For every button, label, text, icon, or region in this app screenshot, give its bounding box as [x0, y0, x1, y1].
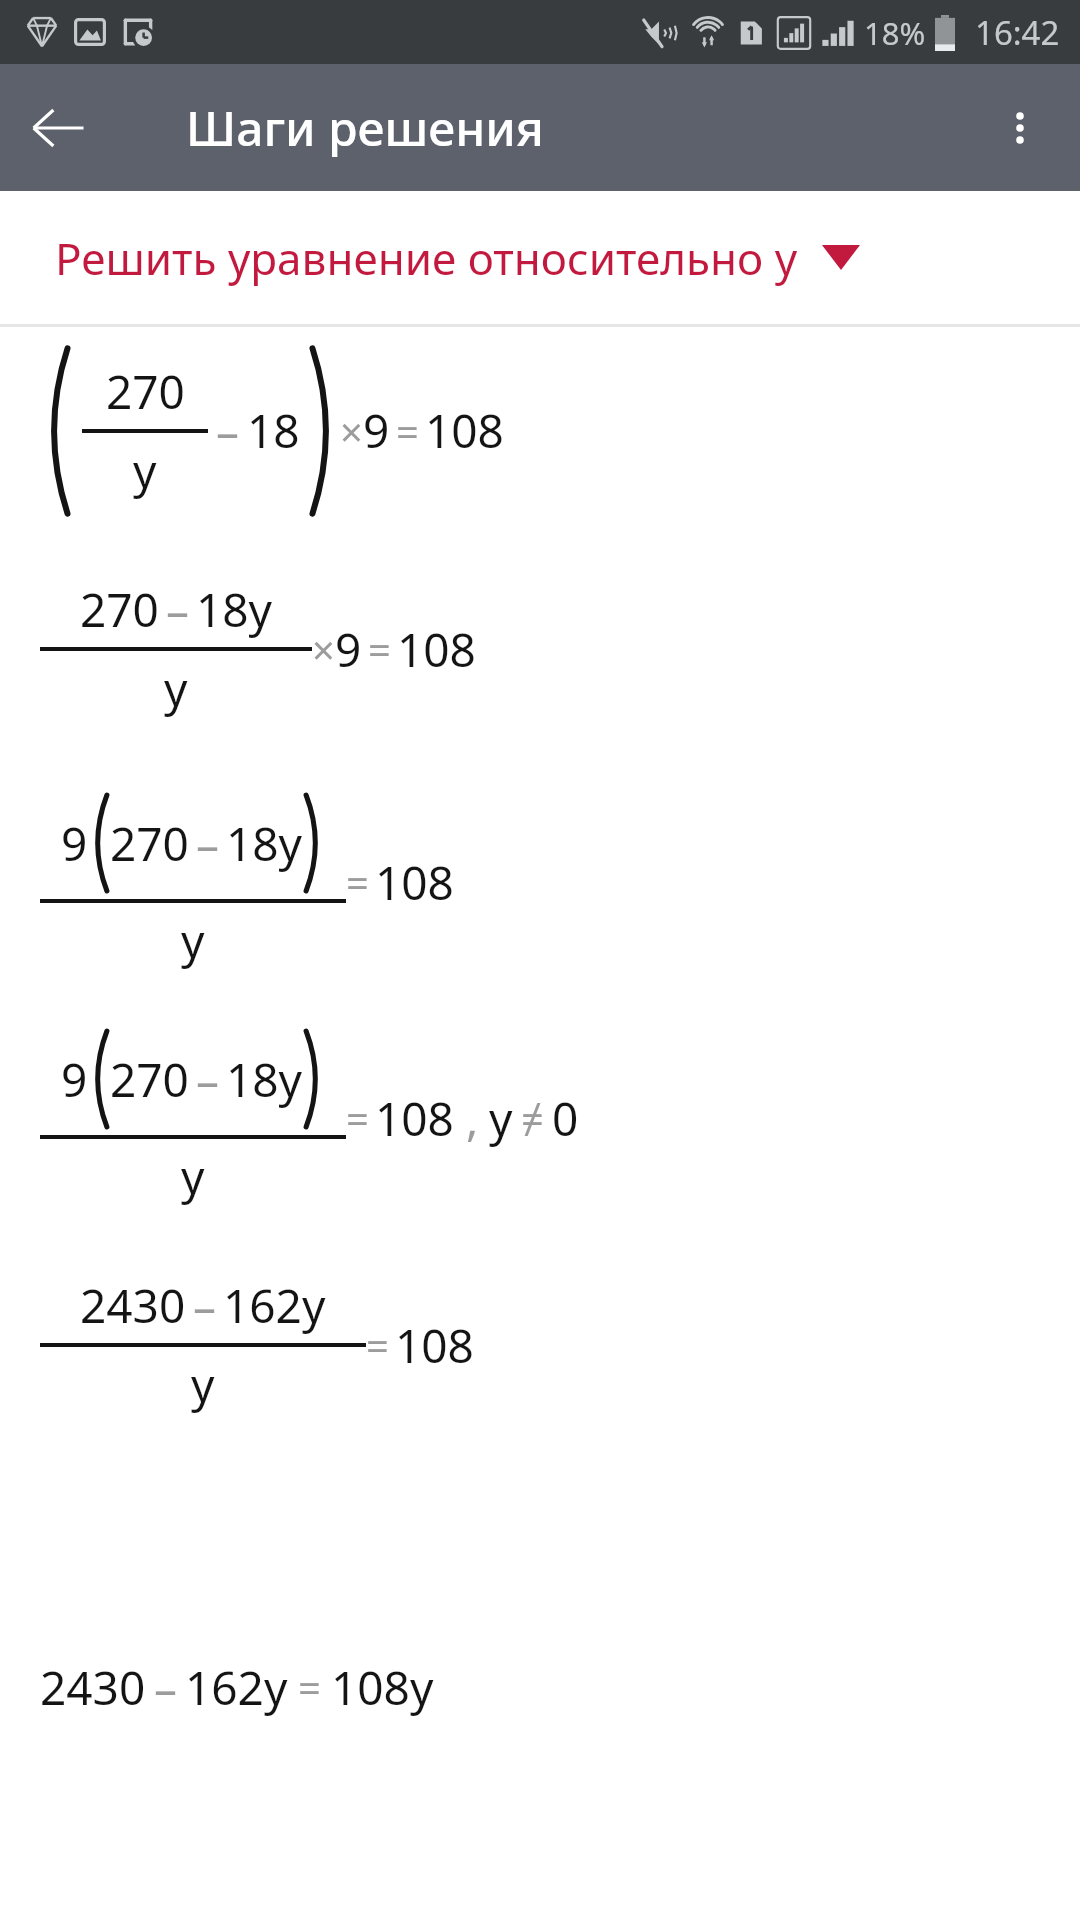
staticText: Шаги решения: [186, 95, 544, 160]
staticText: 270: [110, 812, 189, 875]
staticText: 18%: [864, 12, 926, 54]
button[interactable]: 270: [0, 534, 1080, 764]
staticText: –: [196, 812, 219, 875]
staticText: 108: [425, 399, 504, 462]
staticText: 108: [395, 1314, 474, 1377]
staticText: 108y: [331, 1656, 434, 1719]
staticText: y: [489, 1087, 513, 1150]
staticText: 108: [375, 851, 454, 914]
staticText: ×: [312, 622, 335, 676]
button[interactable]: 270: [0, 327, 1080, 534]
staticText: 9: [335, 618, 362, 681]
button[interactable]: Решить уравнение относительно y: [0, 191, 1080, 324]
staticText: y: [181, 1145, 205, 1208]
staticText: 270: [80, 578, 159, 641]
staticText: =: [396, 404, 419, 458]
staticText: 108: [375, 1087, 454, 1150]
staticText: 162y: [223, 1274, 326, 1337]
staticText: 2430: [40, 1656, 146, 1719]
staticText: 16:42: [975, 10, 1060, 55]
button[interactable]: 9: [0, 1000, 1080, 1236]
staticText: ×: [340, 404, 363, 458]
staticText: –: [193, 1274, 216, 1337]
staticText: =: [346, 1091, 369, 1145]
staticText: =: [298, 1660, 321, 1714]
staticText: 18y: [226, 1048, 303, 1111]
staticText: y: [191, 1353, 215, 1416]
staticText: 18y: [226, 812, 303, 875]
staticText: –: [216, 399, 239, 462]
button[interactable]: 9: [0, 764, 1080, 1000]
staticText: =: [368, 622, 391, 676]
staticText: ≠: [521, 1091, 544, 1145]
staticText: y: [181, 909, 205, 972]
staticText: 162y: [185, 1656, 288, 1719]
staticText: Решить уравнение относительно y: [55, 228, 798, 288]
staticText: 18y: [196, 578, 273, 641]
staticText: 0: [552, 1087, 579, 1150]
staticText: 9: [363, 399, 390, 462]
staticText: 2430: [80, 1274, 186, 1337]
staticText: 9: [61, 1048, 88, 1111]
staticText: =: [366, 1318, 389, 1372]
button[interactable]: 2430: [0, 1236, 1080, 1454]
staticText: 270: [106, 360, 185, 423]
staticText: 108: [397, 618, 476, 681]
button[interactable]: More options: [982, 90, 1058, 166]
button[interactable]: 2430: [0, 1454, 1080, 1920]
staticText: 9: [61, 812, 88, 875]
staticText: y: [133, 439, 157, 502]
staticText: 18: [247, 399, 300, 462]
staticText: ,: [466, 1087, 479, 1150]
staticText: 270: [110, 1048, 189, 1111]
staticText: =: [346, 855, 369, 909]
staticText: –: [166, 578, 189, 641]
staticText: –: [154, 1656, 177, 1719]
staticText: y: [164, 657, 188, 720]
staticText: –: [196, 1048, 219, 1111]
button[interactable]: Back: [20, 90, 96, 166]
